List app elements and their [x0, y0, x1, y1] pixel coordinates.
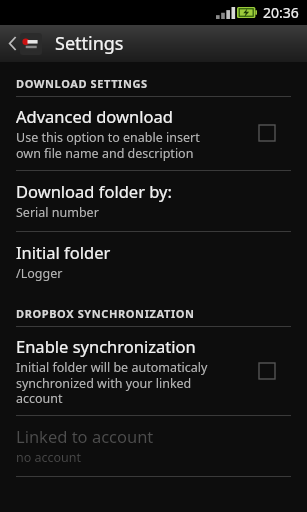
staticText: 20:36	[263, 3, 299, 22]
staticText: Settings	[55, 31, 124, 56]
button[interactable]: Download folder by:	[0, 171, 307, 231]
staticText: Initial folder will be automaticaly sync…	[16, 359, 208, 406]
button[interactable]: Enable synchronization	[0, 327, 307, 415]
staticText: no account	[16, 449, 82, 466]
staticText: DROPBOX SYNCHRONIZATION	[16, 306, 195, 321]
staticText: Linked to account	[16, 425, 154, 447]
button[interactable]: Initial folder	[0, 232, 307, 292]
button[interactable]: Navigate up	[6, 25, 45, 62]
staticText: DOWNLOAD SETTINGS	[16, 76, 148, 91]
button[interactable]: Linked to account	[0, 416, 307, 476]
staticText: Download folder by:	[16, 180, 172, 202]
staticText: /Logger	[16, 265, 63, 282]
staticText: Use this option to enable insert own fil…	[16, 129, 200, 161]
staticText: Initial folder	[16, 241, 111, 263]
staticText: Enable synchronization	[16, 335, 196, 357]
staticText: Advanced download	[16, 105, 173, 127]
button[interactable]: Advanced download	[0, 97, 307, 170]
staticText: Serial number	[16, 204, 99, 221]
